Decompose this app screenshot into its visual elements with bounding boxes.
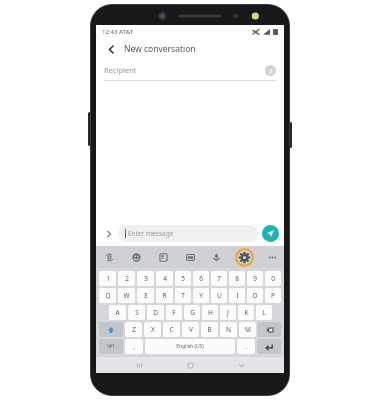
- staticText: 0: [271, 274, 275, 283]
- button[interactable]: Keyboard settings: [235, 248, 254, 267]
- staticText: Recipient: [104, 65, 137, 75]
- button[interactable]: 1: [99, 271, 116, 286]
- button[interactable]: 9: [247, 271, 263, 286]
- button[interactable]: Enter: [257, 339, 281, 354]
- staticText: 5: [181, 274, 185, 283]
- button[interactable]: Enter message: [118, 225, 258, 242]
- staticText: P: [271, 291, 275, 300]
- staticText: V: [189, 325, 193, 334]
- staticText: S: [135, 308, 139, 317]
- button[interactable]: W: [118, 288, 135, 303]
- button[interactable]: X: [144, 322, 161, 337]
- staticText: !#1: [107, 343, 115, 350]
- staticText: English (US): [176, 343, 204, 350]
- staticText: A: [115, 308, 120, 317]
- button[interactable]: H: [202, 305, 218, 320]
- button[interactable]: Recipient: [104, 60, 276, 80]
- staticText: N: [226, 325, 231, 334]
- button[interactable]: Recents: [131, 357, 147, 373]
- button[interactable]: L: [256, 305, 272, 320]
- button[interactable]: S: [128, 305, 145, 320]
- button[interactable]: G: [184, 305, 200, 320]
- button[interactable]: K: [238, 305, 254, 320]
- button[interactable]: J: [220, 305, 236, 320]
- staticText: D: [153, 308, 158, 317]
- button[interactable]: 3: [137, 271, 154, 286]
- button[interactable]: 6: [193, 271, 209, 286]
- button[interactable]: More options: [265, 250, 279, 264]
- staticText: 4: [163, 274, 167, 283]
- button[interactable]: Q: [99, 288, 116, 303]
- button[interactable]: GIF: [182, 249, 198, 265]
- staticText: 7: [217, 274, 221, 283]
- staticText: ,: [133, 342, 135, 351]
- button[interactable]: C: [163, 322, 180, 337]
- button[interactable]: Y: [193, 288, 209, 303]
- staticText: X: [151, 325, 155, 334]
- staticText: L: [262, 308, 266, 317]
- staticText: 2: [125, 274, 129, 283]
- button[interactable]: Home: [182, 357, 198, 373]
- button[interactable]: Predictive text: [101, 249, 117, 265]
- button[interactable]: ,: [125, 339, 143, 354]
- button[interactable]: Send: [262, 225, 279, 242]
- button[interactable]: Back: [233, 357, 249, 373]
- button[interactable]: English (US): [145, 339, 235, 354]
- button[interactable]: R: [156, 288, 173, 303]
- button[interactable]: Backspace: [258, 322, 281, 337]
- staticText: 3: [144, 274, 148, 283]
- staticText: 1: [106, 274, 110, 283]
- button[interactable]: B: [201, 322, 218, 337]
- staticText: 9: [253, 274, 257, 283]
- staticText: I: [236, 291, 239, 300]
- button[interactable]: P: [265, 288, 281, 303]
- staticText: K: [244, 308, 249, 317]
- staticText: T: [181, 291, 185, 300]
- button[interactable]: M: [239, 322, 256, 337]
- button[interactable]: 0: [265, 271, 281, 286]
- button[interactable]: Expand options: [101, 226, 116, 241]
- staticText: M: [245, 325, 251, 334]
- button[interactable]: A: [109, 305, 126, 320]
- button[interactable]: F: [166, 305, 182, 320]
- button[interactable]: Emoji: [128, 249, 144, 265]
- staticText: C: [169, 325, 174, 334]
- staticText: 8: [235, 274, 239, 283]
- button[interactable]: Voice input: [208, 249, 224, 265]
- staticText: E: [144, 291, 148, 300]
- button[interactable]: E: [137, 288, 154, 303]
- staticText: .: [245, 342, 247, 351]
- button[interactable]: I: [229, 288, 245, 303]
- button[interactable]: .: [237, 339, 255, 354]
- staticText: Q: [105, 291, 111, 300]
- staticText: 6: [199, 274, 203, 283]
- button[interactable]: Z: [125, 322, 142, 337]
- button[interactable]: 5: [175, 271, 191, 286]
- staticText: G: [190, 308, 195, 317]
- staticText: H: [208, 308, 213, 317]
- staticText: W: [123, 291, 130, 300]
- button[interactable]: 7: [211, 271, 227, 286]
- staticText: 12:43 AT&T: [102, 28, 134, 36]
- staticText: Y: [199, 291, 203, 300]
- button[interactable]: U: [211, 288, 227, 303]
- button[interactable]: Shift: [99, 322, 123, 337]
- button[interactable]: 8: [229, 271, 245, 286]
- staticText: R: [162, 291, 167, 300]
- staticText: B: [207, 325, 212, 334]
- button[interactable]: Stickers: [155, 249, 171, 265]
- button[interactable]: O: [247, 288, 263, 303]
- button[interactable]: Back: [102, 40, 120, 58]
- staticText: New conversation: [124, 43, 196, 55]
- button[interactable]: N: [220, 322, 237, 337]
- button[interactable]: !#1: [99, 339, 123, 354]
- staticText: F: [172, 308, 176, 317]
- button[interactable]: V: [182, 322, 199, 337]
- button[interactable]: D: [147, 305, 164, 320]
- button[interactable]: T: [175, 288, 191, 303]
- staticText: U: [217, 291, 222, 300]
- staticText: Enter message: [128, 229, 174, 238]
- button[interactable]: 4: [156, 271, 173, 286]
- button[interactable]: 2: [118, 271, 135, 286]
- button[interactable]: Add recipient: [265, 65, 276, 76]
